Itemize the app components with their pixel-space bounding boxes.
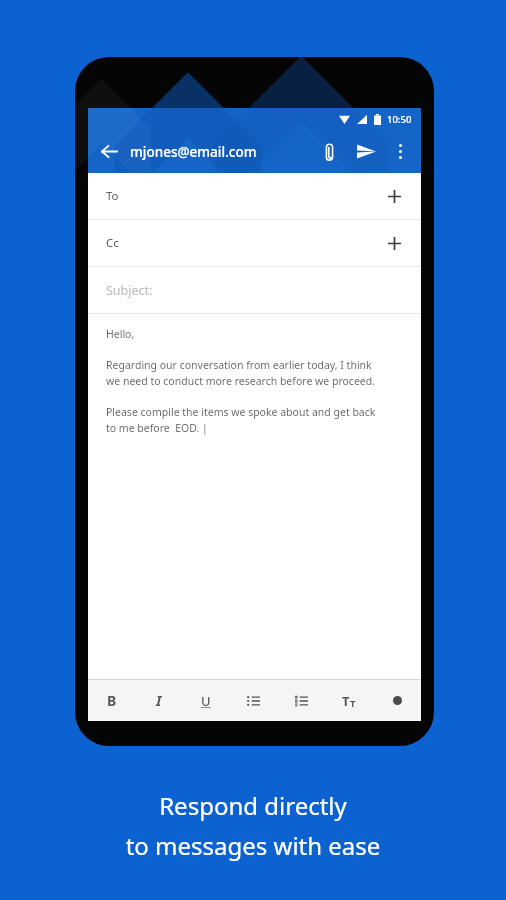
button[interactable]: Back <box>88 130 130 173</box>
button[interactable]: Text colour <box>373 680 421 721</box>
button[interactable]: Send <box>347 130 385 173</box>
staticText: T <box>350 697 356 710</box>
staticText: U <box>201 692 211 710</box>
button[interactable]: Cc <box>88 220 421 266</box>
staticText: Cc <box>106 235 119 251</box>
button[interactable]: Add Cc recipient <box>381 230 407 256</box>
button[interactable]: More options <box>385 130 415 173</box>
staticText: To <box>106 188 119 204</box>
staticText: I <box>156 691 162 710</box>
button[interactable]: Text size <box>325 680 373 721</box>
button[interactable]: Attach file <box>311 130 347 173</box>
button[interactable]: Add To recipient <box>381 183 407 209</box>
staticText: T <box>342 692 350 710</box>
staticText: Subject: <box>106 282 153 299</box>
staticText: Hello, <box>106 327 135 341</box>
button[interactable]: Numbered list <box>277 680 325 721</box>
staticText: Regarding our conversation from earlier … <box>106 358 376 388</box>
button[interactable]: Underline <box>182 680 229 721</box>
staticText: B <box>107 691 117 710</box>
button[interactable]: Italic <box>135 680 182 721</box>
button[interactable]: Bulleted list <box>229 680 277 721</box>
staticText: to messages with ease <box>0 829 506 862</box>
staticText: 10:50 <box>387 113 412 126</box>
button[interactable]: Bold <box>88 680 135 721</box>
button[interactable]: Subject: <box>88 267 421 313</box>
staticText: Please compile the items we spoke about … <box>106 405 376 435</box>
staticText: Respond directly <box>0 789 506 822</box>
staticText: mjones@email.com <box>130 143 257 161</box>
button[interactable]: To <box>88 173 421 219</box>
button[interactable]: Hello, <box>88 314 421 679</box>
